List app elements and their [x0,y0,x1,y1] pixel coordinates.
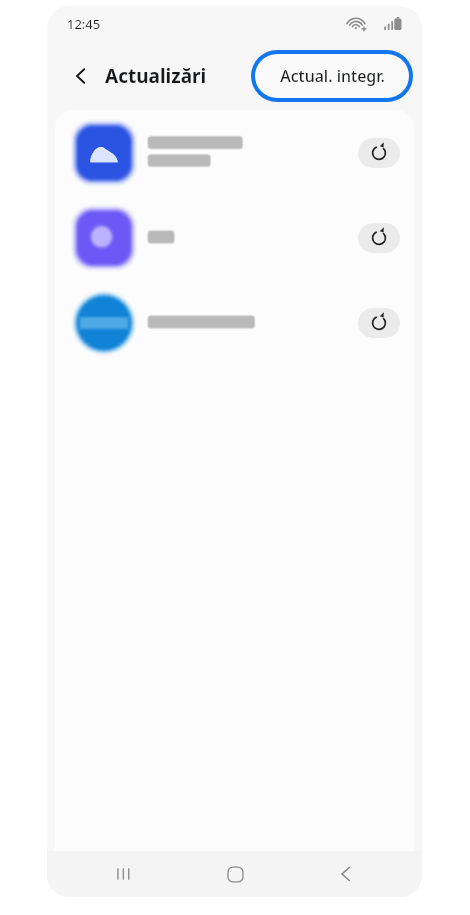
button[interactable]: Recente [88,851,158,897]
button[interactable]: Actual. integr. [255,54,409,98]
button[interactable]: Înapoi [61,56,101,96]
button[interactable]: Reîncercare [358,138,400,168]
button[interactable]: Acasă [200,851,270,897]
staticText: Actual. integr. [280,65,385,87]
staticText: Actualizări [105,63,207,89]
staticText: 12:45 [67,15,101,33]
button[interactable]: Reîncercare [55,110,414,195]
button[interactable]: Înapoi [311,851,381,897]
button[interactable]: Reîncercare [55,195,414,280]
button[interactable]: Reîncercare [358,308,400,338]
button[interactable]: Reîncercare [55,280,414,365]
button[interactable]: Reîncercare [358,223,400,253]
